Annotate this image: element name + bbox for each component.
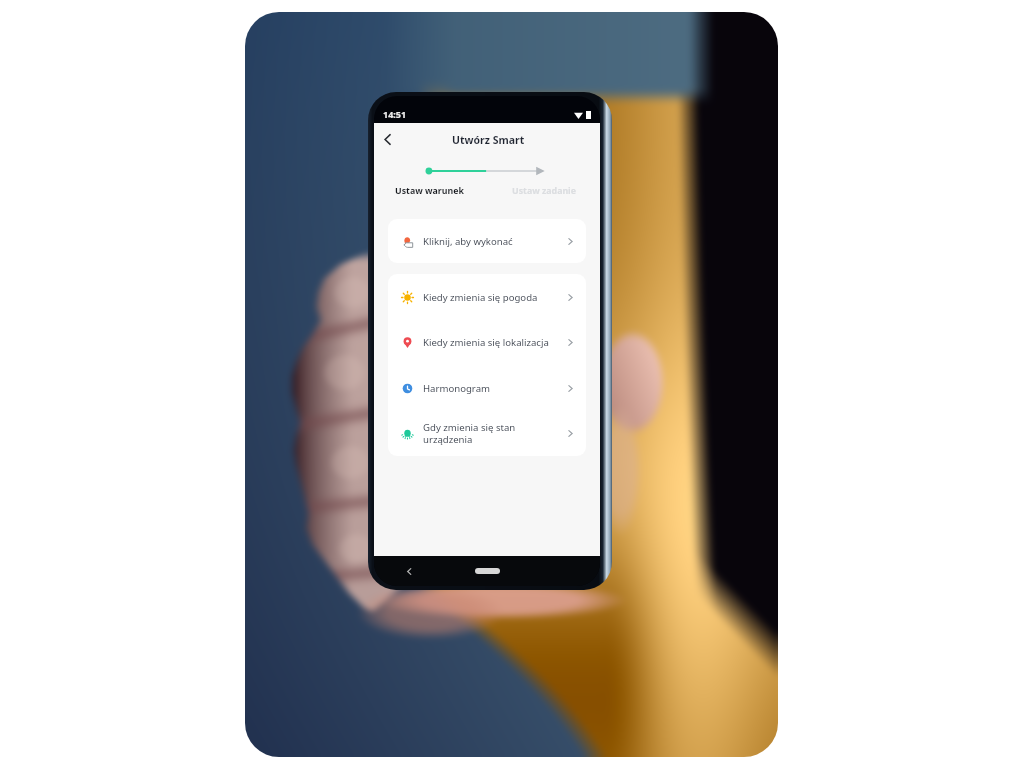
staticText: Kiedy zmienia się pogoda bbox=[423, 291, 538, 304]
staticText: Kliknij, aby wykonać bbox=[423, 235, 513, 248]
button[interactable]: Kliknij, aby wykonać bbox=[388, 219, 586, 263]
button[interactable]: Kiedy zmienia się pogoda bbox=[388, 274, 586, 320]
staticText: Kiedy zmienia się lokalizacja bbox=[423, 336, 549, 349]
staticText: Harmonogram bbox=[423, 382, 490, 395]
button[interactable]: Back bbox=[402, 564, 416, 578]
staticText: Ustaw warunek bbox=[395, 185, 464, 197]
button[interactable]: Back bbox=[376, 128, 398, 150]
button[interactable]: Kiedy zmienia się lokalizacja bbox=[388, 320, 586, 365]
staticText: Gdy zmienia się stan urządzenia bbox=[423, 421, 516, 446]
staticText: Utwórz Smart bbox=[452, 133, 525, 147]
staticText: 14:51 bbox=[383, 108, 407, 120]
button[interactable]: Harmonogram bbox=[388, 365, 586, 411]
button[interactable]: Home bbox=[475, 568, 500, 574]
staticText: Ustaw zadanie bbox=[512, 185, 577, 197]
button[interactable]: Gdy zmienia się stan urządzenia bbox=[388, 411, 586, 456]
